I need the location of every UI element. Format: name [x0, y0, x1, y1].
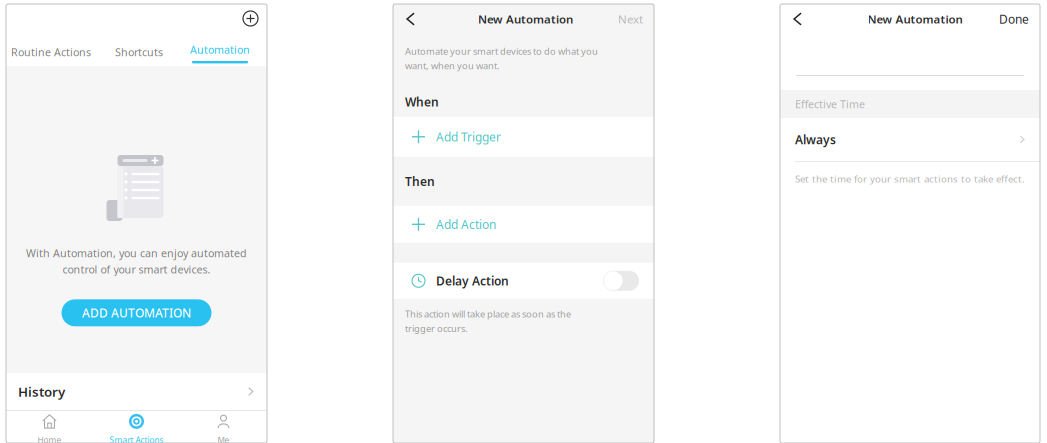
staticText: Always	[795, 131, 836, 147]
button[interactable]: Back	[393, 12, 429, 26]
staticText: Shortcuts	[115, 45, 163, 59]
button[interactable]: Me	[180, 410, 267, 443]
staticText: When	[405, 94, 439, 110]
staticText: Effective Time	[795, 97, 865, 111]
staticText: Done	[999, 11, 1029, 27]
button[interactable]: Home	[6, 410, 93, 443]
staticText: New Automation	[478, 11, 573, 27]
button[interactable]: Done	[988, 11, 1040, 27]
staticText: Delay Action	[436, 273, 509, 289]
staticText: Automation	[190, 42, 250, 57]
button[interactable]: Routine Actions	[6, 38, 108, 66]
staticText: want, when you want.	[405, 59, 500, 72]
staticText: trigger occurs.	[405, 322, 468, 335]
staticText: Next	[618, 11, 643, 27]
button[interactable]: ADD AUTOMATION	[61, 299, 211, 326]
staticText: Routine Actions	[11, 45, 91, 59]
staticText: History	[18, 383, 65, 400]
staticText: Home	[37, 434, 61, 443]
button[interactable]: Next	[607, 11, 654, 27]
staticText: Smart Actions	[109, 434, 163, 443]
staticText: Set the time for your smart actions to t…	[795, 172, 1025, 185]
button[interactable]: Delay Action	[393, 263, 654, 299]
button[interactable]: Back	[780, 12, 816, 26]
button[interactable]: Add Trigger	[393, 117, 654, 157]
button[interactable]: History	[6, 373, 267, 410]
staticText: Add Action	[436, 216, 496, 232]
staticText: New Automation	[867, 11, 962, 27]
button[interactable]: Add	[243, 4, 267, 38]
button[interactable]: Always	[780, 118, 1040, 161]
button[interactable]: Automation	[183, 38, 257, 66]
button[interactable]: Shortcuts	[108, 38, 183, 66]
staticText: Add Trigger	[436, 129, 501, 145]
staticText: Then	[405, 173, 435, 189]
staticText: Me	[217, 434, 229, 443]
staticText: With Automation, you can enjoy automated	[26, 246, 247, 260]
button[interactable]: Add Action	[393, 206, 654, 243]
staticText: ADD AUTOMATION	[82, 305, 191, 321]
staticText: This action will take place as soon as t…	[405, 308, 571, 320]
button[interactable]: Smart Actions	[93, 410, 180, 443]
staticText: Automate your smart devices to do what y…	[405, 45, 598, 57]
staticText: control of your smart devices.	[62, 262, 210, 276]
